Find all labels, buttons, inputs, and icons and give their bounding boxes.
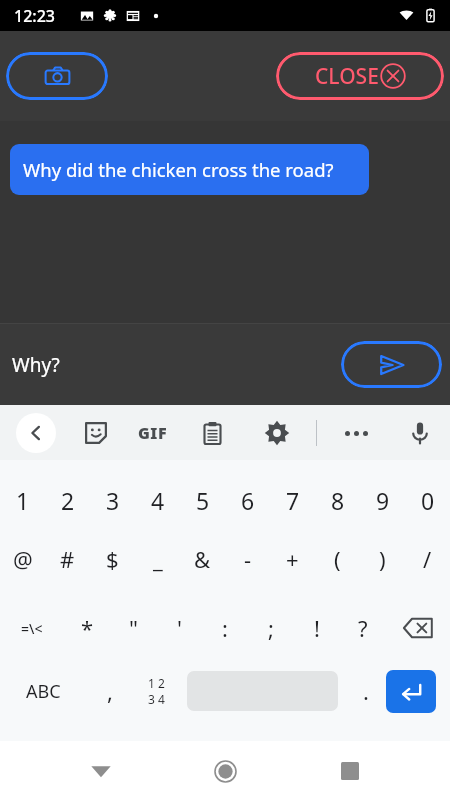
button[interactable]: Take photo <box>6 52 108 100</box>
button[interactable]: ! <box>294 600 340 656</box>
button[interactable]: Enter <box>386 670 436 713</box>
staticText: . <box>363 676 369 706</box>
button[interactable]: 9 <box>360 473 405 527</box>
staticText: Why? <box>12 352 60 378</box>
button[interactable]: Back <box>77 747 125 795</box>
button[interactable]: 6 <box>225 473 270 527</box>
button[interactable]: 2 <box>45 473 90 527</box>
button[interactable]: CLOSE <box>276 52 444 100</box>
button[interactable]: 1 <box>0 473 45 527</box>
staticText: / <box>423 544 432 574</box>
staticText: 3 4 <box>148 691 165 707</box>
staticText: 0 <box>421 485 435 516</box>
staticText: ABC <box>26 679 61 704</box>
button[interactable]: ; <box>248 600 294 656</box>
button[interactable]: 3 <box>90 473 135 527</box>
button[interactable]: , <box>86 665 134 717</box>
button[interactable]: Voice input <box>404 417 436 449</box>
staticText: 2 <box>61 485 75 516</box>
button[interactable]: * <box>64 600 110 656</box>
button[interactable]: GIF <box>133 413 173 453</box>
button[interactable]: / <box>405 532 450 586</box>
button[interactable]: + <box>270 532 315 586</box>
button[interactable]: 8 <box>315 473 360 527</box>
staticText: & <box>194 544 211 574</box>
staticText: - <box>244 544 252 574</box>
button[interactable]: Home <box>201 747 249 795</box>
staticText: _ <box>153 544 163 574</box>
staticText: ( <box>334 544 341 574</box>
button[interactable]: Send <box>341 341 442 388</box>
button[interactable]: . <box>346 665 386 717</box>
staticText: 5 <box>196 485 210 516</box>
button[interactable]: Stickers <box>80 417 112 449</box>
button[interactable]: ( <box>315 532 360 586</box>
staticText: =\< <box>21 619 43 638</box>
staticText: ' <box>177 613 182 643</box>
button[interactable]: Clipboard <box>196 417 228 449</box>
button[interactable]: - <box>225 532 270 586</box>
staticText: 1 <box>16 485 30 516</box>
button[interactable]: ' <box>156 600 202 656</box>
button[interactable]: 7 <box>270 473 315 527</box>
staticText: 12:23 <box>14 5 55 27</box>
staticText: * <box>81 613 94 643</box>
button[interactable]: Back <box>16 413 56 453</box>
staticText: Why did the chicken cross the road? <box>23 157 356 182</box>
button[interactable]: 0 <box>405 473 450 527</box>
button[interactable]: @ <box>0 532 45 586</box>
button[interactable]: # <box>45 532 90 586</box>
staticText: 4 <box>151 485 165 516</box>
staticText: + <box>286 544 299 574</box>
button[interactable]: Settings <box>260 416 294 450</box>
button[interactable]: & <box>180 532 225 586</box>
button[interactable]: 5 <box>180 473 225 527</box>
staticText: 7 <box>286 485 300 516</box>
staticText: ) <box>379 544 386 574</box>
button[interactable]: Backspace <box>386 600 450 656</box>
staticText: 3 <box>106 485 120 516</box>
button[interactable]: $ <box>90 532 135 586</box>
button[interactable]: : <box>202 600 248 656</box>
button[interactable]: Recents <box>326 747 374 795</box>
button[interactable]: ABC <box>0 665 86 717</box>
staticText: 9 <box>376 485 390 516</box>
staticText: 1 2 <box>148 675 165 691</box>
button[interactable]: ) <box>360 532 405 586</box>
button[interactable]: =\< <box>0 600 64 656</box>
staticText: @ <box>13 544 33 574</box>
button[interactable]: _ <box>135 532 180 586</box>
staticText: ? <box>358 613 368 643</box>
button[interactable]: " <box>110 600 156 656</box>
staticText: , <box>107 676 113 706</box>
staticText: $ <box>106 544 119 574</box>
button[interactable]: ? <box>340 600 386 656</box>
staticText: GIF <box>138 422 168 444</box>
staticText: 6 <box>241 485 255 516</box>
button[interactable]: Numbers <box>134 665 179 717</box>
staticText: ! <box>314 613 320 643</box>
staticText: ; <box>268 613 274 643</box>
button[interactable]: More options <box>338 415 374 451</box>
staticText: # <box>60 544 75 574</box>
button[interactable]: 4 <box>135 473 180 527</box>
staticText: : <box>222 613 228 643</box>
staticText: " <box>129 613 138 643</box>
button[interactable]: Why did the chicken cross the road? <box>10 144 369 195</box>
staticText: 8 <box>331 485 345 516</box>
staticText: CLOSE <box>315 62 379 91</box>
